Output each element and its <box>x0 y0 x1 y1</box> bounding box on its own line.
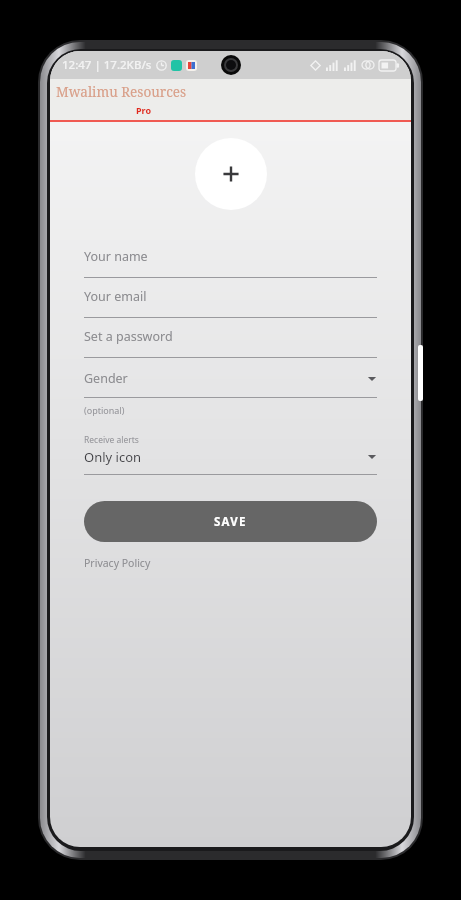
button[interactable]: SAVE <box>84 501 377 542</box>
staticText: Gender <box>84 370 367 387</box>
button[interactable]: Add profile photo <box>195 138 267 210</box>
button[interactable]: Your email <box>84 278 377 318</box>
staticText: (optional) <box>84 404 125 416</box>
button[interactable]: Set a password <box>84 318 377 358</box>
staticText: SAVE <box>214 514 247 530</box>
button[interactable]: Receive alerts <box>84 428 377 475</box>
staticText: 12:47 | 17.2KB/s <box>62 57 152 73</box>
staticText: Only icon <box>84 448 367 466</box>
staticText: Receive alerts <box>84 434 139 446</box>
staticText: Your email <box>84 288 147 305</box>
staticText: Mwalimu Resources <box>56 83 187 101</box>
button[interactable]: Gender <box>84 358 377 398</box>
staticText: Privacy Policy <box>84 556 151 570</box>
button[interactable]: Privacy Policy <box>84 556 151 570</box>
staticText: Pro <box>136 104 411 116</box>
staticText: Your name <box>84 248 148 265</box>
button[interactable]: Your name <box>84 238 377 278</box>
staticText: Set a password <box>84 328 173 345</box>
